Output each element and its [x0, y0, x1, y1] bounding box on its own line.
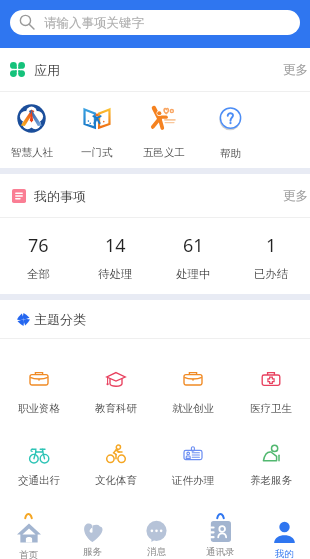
- button[interactable]: 1: [232, 218, 310, 294]
- button[interactable]: 请输入事项关键字: [10, 10, 300, 35]
- staticText: 就业创业: [172, 402, 214, 415]
- button[interactable]: 消息: [124, 512, 188, 559]
- button[interactable]: 医疗卫生: [232, 339, 310, 418]
- staticText: 教育科研: [95, 402, 137, 415]
- staticText: 通讯录: [206, 546, 235, 558]
- staticText: 我的事项: [34, 188, 86, 204]
- staticText: 更多: [283, 62, 308, 78]
- staticText: 服务: [83, 546, 102, 558]
- button[interactable]: 帮助: [197, 92, 264, 168]
- staticText: 请输入事项关键字: [44, 15, 144, 31]
- button[interactable]: 首页: [0, 512, 60, 559]
- button[interactable]: 智慧人社: [0, 92, 63, 168]
- button[interactable]: 教育科研: [77, 339, 154, 418]
- staticText: 首页: [19, 549, 38, 559]
- staticText: 主题分类: [34, 311, 86, 327]
- staticText: 全部: [27, 267, 50, 281]
- staticText: 职业资格: [18, 402, 60, 415]
- button[interactable]: 一门式: [63, 92, 130, 168]
- button[interactable]: 职业资格: [0, 339, 77, 418]
- staticText: 一门式: [81, 146, 113, 159]
- staticText: 更多: [283, 188, 308, 204]
- staticText: 文化体育: [95, 474, 137, 487]
- staticText: 帮助: [220, 147, 241, 160]
- staticText: 1: [266, 233, 277, 258]
- staticText: 医疗卫生: [250, 402, 292, 415]
- button[interactable]: 我的: [252, 512, 310, 559]
- staticText: 应用: [34, 62, 60, 78]
- button[interactable]: 养老服务: [232, 418, 310, 494]
- staticText: 我的: [275, 548, 294, 559]
- button[interactable]: 61: [154, 218, 232, 294]
- button[interactable]: 交通出行: [0, 418, 77, 494]
- button[interactable]: 14: [77, 218, 154, 294]
- staticText: 消息: [147, 546, 166, 558]
- button[interactable]: 五邑义工: [130, 92, 197, 168]
- staticText: 已办结: [254, 267, 289, 281]
- button[interactable]: 更多: [283, 188, 308, 204]
- staticText: 交通出行: [18, 474, 60, 487]
- staticText: 五邑义工: [143, 146, 185, 159]
- button[interactable]: 服务: [60, 512, 124, 559]
- button[interactable]: 证件办理: [154, 418, 232, 494]
- staticText: 处理中: [176, 267, 211, 281]
- button[interactable]: 就业创业: [154, 339, 232, 418]
- staticText: 76: [28, 233, 49, 258]
- staticText: 智慧人社: [11, 146, 53, 159]
- button[interactable]: 76: [0, 218, 77, 294]
- staticText: 61: [183, 233, 204, 258]
- staticText: 待处理: [98, 267, 133, 281]
- button[interactable]: 通讯录: [188, 512, 252, 559]
- staticText: 证件办理: [172, 474, 214, 487]
- button[interactable]: 更多: [283, 62, 308, 78]
- button[interactable]: 文化体育: [77, 418, 154, 494]
- staticText: 14: [105, 233, 126, 258]
- staticText: 养老服务: [250, 474, 292, 487]
